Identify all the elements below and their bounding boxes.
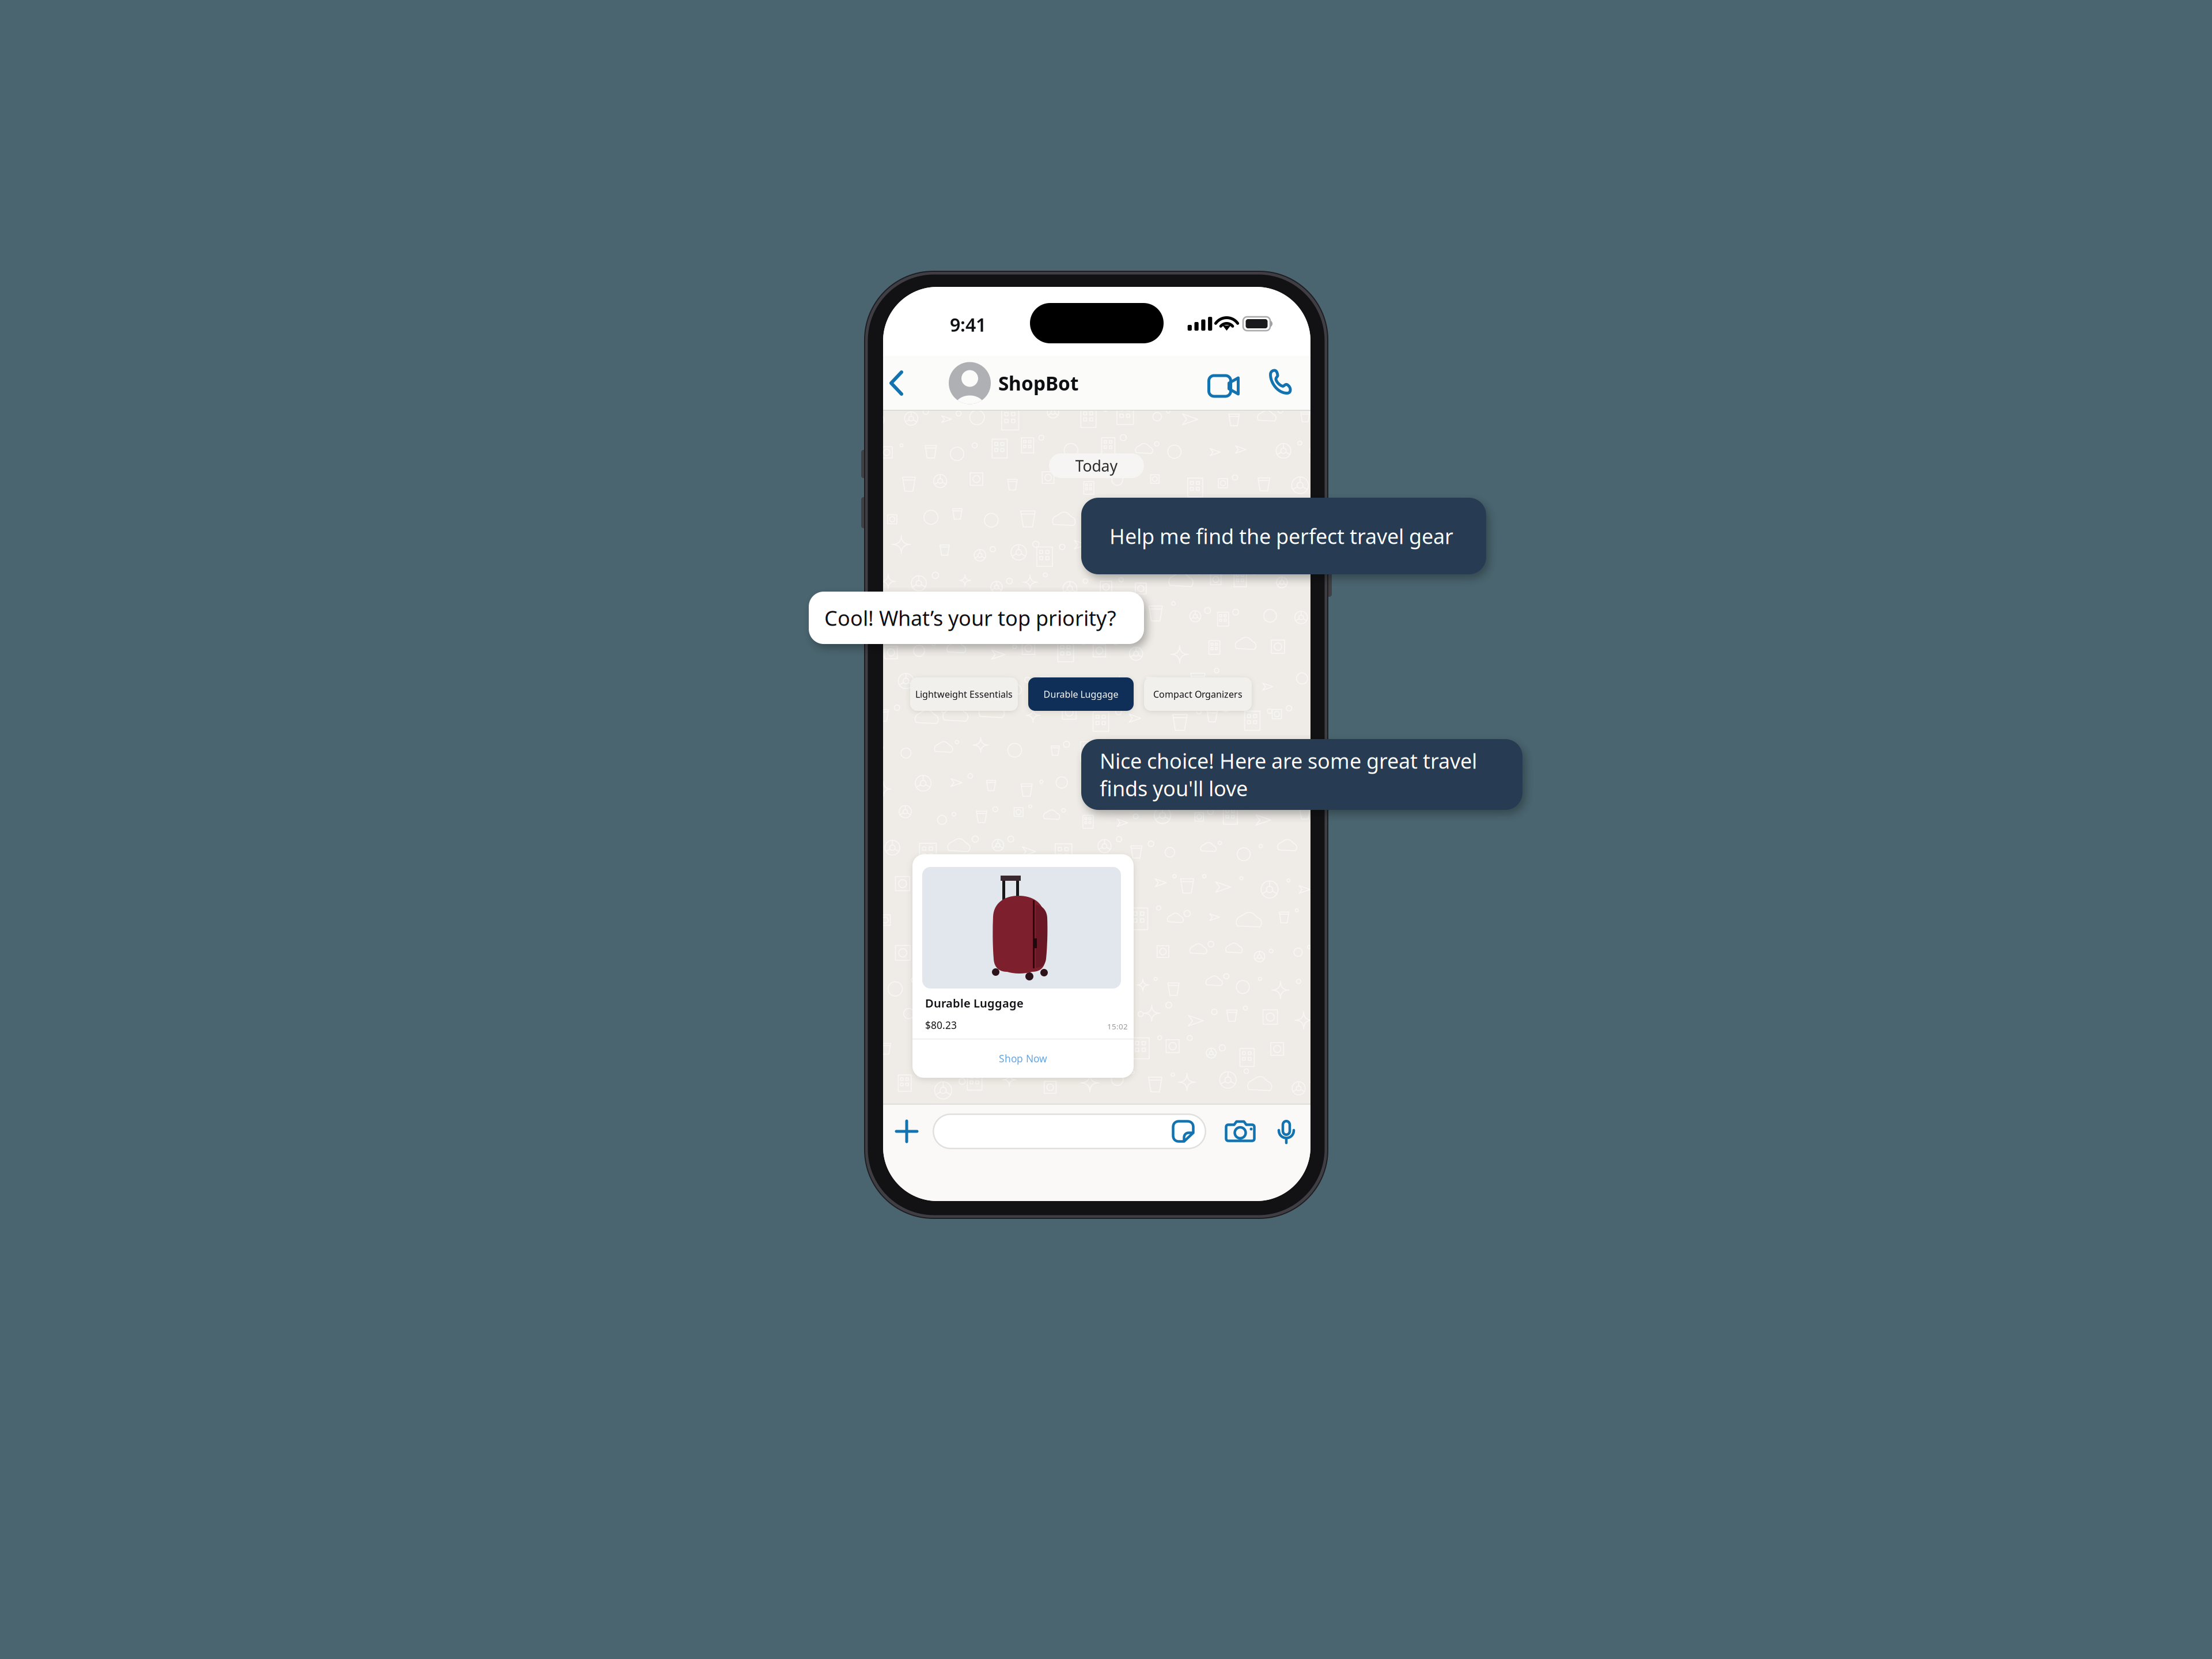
staticText: Durable Luggage <box>1043 688 1118 700</box>
button[interactable]: Durable Luggage <box>1028 677 1134 711</box>
staticText: Compact Organizers <box>1153 688 1243 700</box>
button[interactable]: ShopBot <box>949 361 1078 405</box>
staticText: Lightweight Essentials <box>915 688 1013 700</box>
button[interactable]: Voice message <box>1273 1112 1300 1150</box>
button[interactable]: Stickers <box>1167 1113 1199 1149</box>
staticText: Today <box>1075 456 1118 476</box>
staticText: Shop Now <box>999 1052 1047 1065</box>
button[interactable]: Back <box>880 361 912 405</box>
button[interactable]: Compact Organizers <box>1144 677 1252 711</box>
button[interactable]: Shop Now <box>912 1039 1134 1078</box>
staticText: Help me find the perfect travel gear <box>1109 522 1453 550</box>
button[interactable]: Voice call <box>1262 364 1298 400</box>
staticText: 9:41 <box>950 312 986 337</box>
button[interactable]: Camera <box>1222 1112 1259 1150</box>
staticText: Nice choice! Here are some great travel … <box>1100 747 1477 802</box>
button[interactable]: Attach <box>889 1112 925 1150</box>
button[interactable]: Video call <box>1203 365 1246 401</box>
staticText: ShopBot <box>998 370 1078 396</box>
button[interactable]: Lightweight Essentials <box>910 677 1018 711</box>
staticText: Cool! What’s your top priority? <box>824 604 1116 632</box>
staticText: $80.23 <box>925 1018 957 1032</box>
staticText: Durable Luggage <box>925 995 1024 1011</box>
staticText: 15:02 <box>1107 1021 1128 1032</box>
